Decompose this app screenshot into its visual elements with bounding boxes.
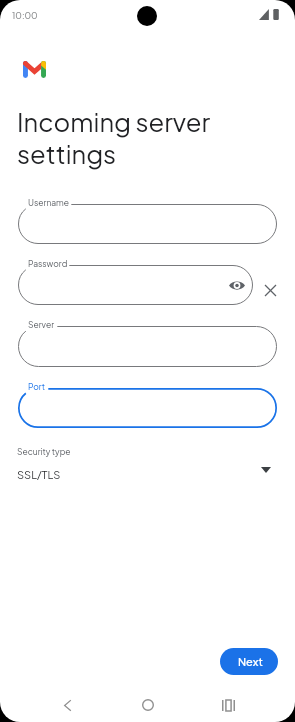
button[interactable]: Recent apps <box>208 685 248 722</box>
button[interactable]: Next <box>220 648 278 675</box>
staticText: Incoming server settings <box>17 105 211 169</box>
button[interactable]: Password <box>18 265 253 305</box>
staticText: Username <box>28 197 70 208</box>
staticText: 10:00 <box>12 10 38 21</box>
button[interactable]: Username <box>18 204 277 244</box>
button[interactable]: Home <box>128 685 168 722</box>
staticText: Next <box>238 655 263 669</box>
staticText: Server <box>28 319 55 330</box>
button[interactable]: Back <box>47 685 87 722</box>
staticText: SSL/TLS <box>17 468 61 482</box>
button[interactable]: Port <box>18 388 277 428</box>
staticText: Port <box>28 381 46 392</box>
staticText: Password <box>28 258 68 269</box>
button[interactable]: Security type <box>0 440 295 488</box>
button[interactable]: Show password <box>225 273 249 297</box>
button[interactable]: Server <box>18 326 277 367</box>
button[interactable]: Clear password <box>259 279 281 301</box>
staticText: Security type <box>17 446 71 457</box>
